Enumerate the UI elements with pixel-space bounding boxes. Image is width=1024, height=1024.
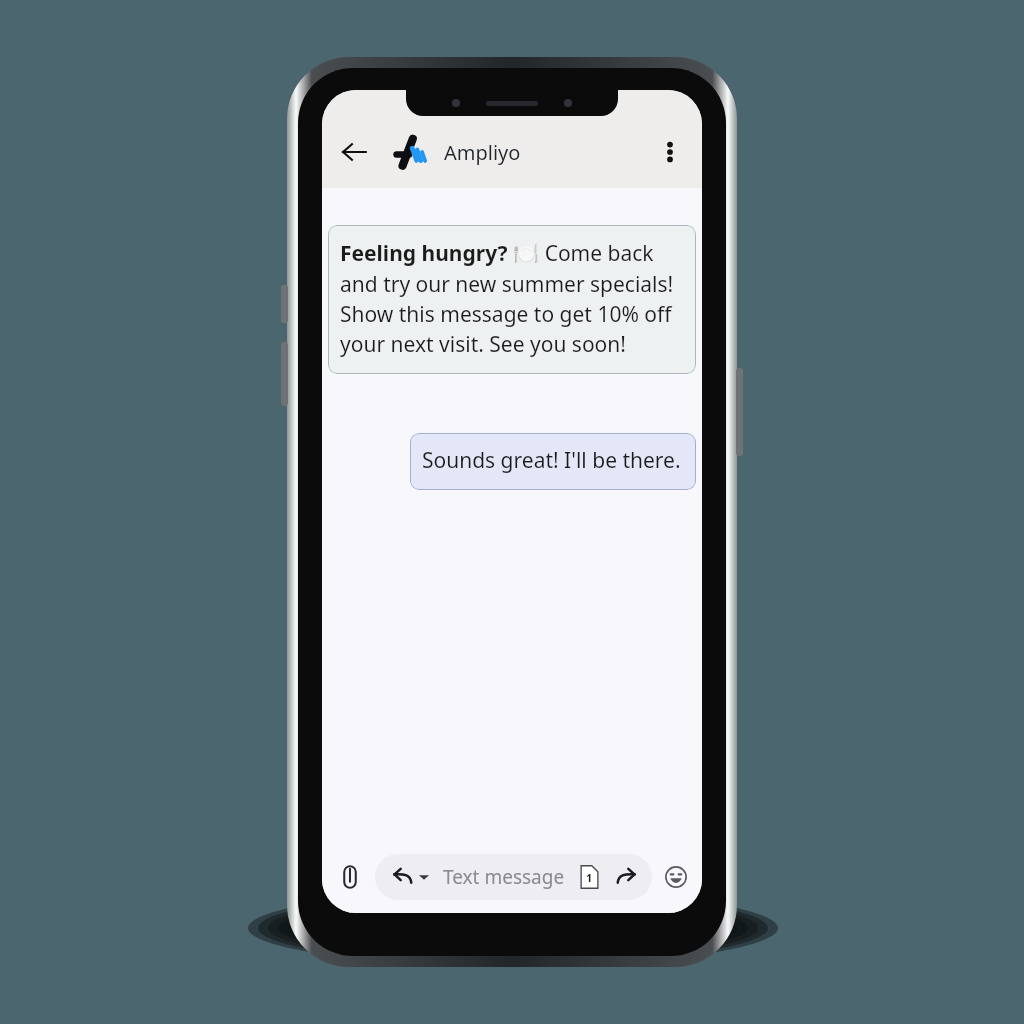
- button[interactable]: Sounds great! I'll be there.: [410, 433, 696, 490]
- button[interactable]: Reply options: [375, 854, 652, 900]
- button[interactable]: Feeling hungry? 🍽️ Come back and try our…: [328, 225, 696, 374]
- button[interactable]: Emoji: [658, 859, 694, 895]
- button[interactable]: 1 page: [576, 864, 602, 890]
- button[interactable]: Back: [332, 130, 376, 174]
- staticText: 1: [586, 870, 593, 885]
- button[interactable]: More options: [648, 130, 692, 174]
- staticText: Ampliyo: [444, 139, 521, 166]
- staticText: Text message: [443, 864, 565, 890]
- button[interactable]: Reply options: [387, 862, 417, 892]
- staticText: Feeling hungry? 🍽️ Come back and try our…: [340, 239, 684, 358]
- button[interactable]: Send: [612, 862, 642, 892]
- staticText: Sounds great! I'll be there.: [422, 446, 681, 475]
- button[interactable]: Attach file: [330, 857, 370, 897]
